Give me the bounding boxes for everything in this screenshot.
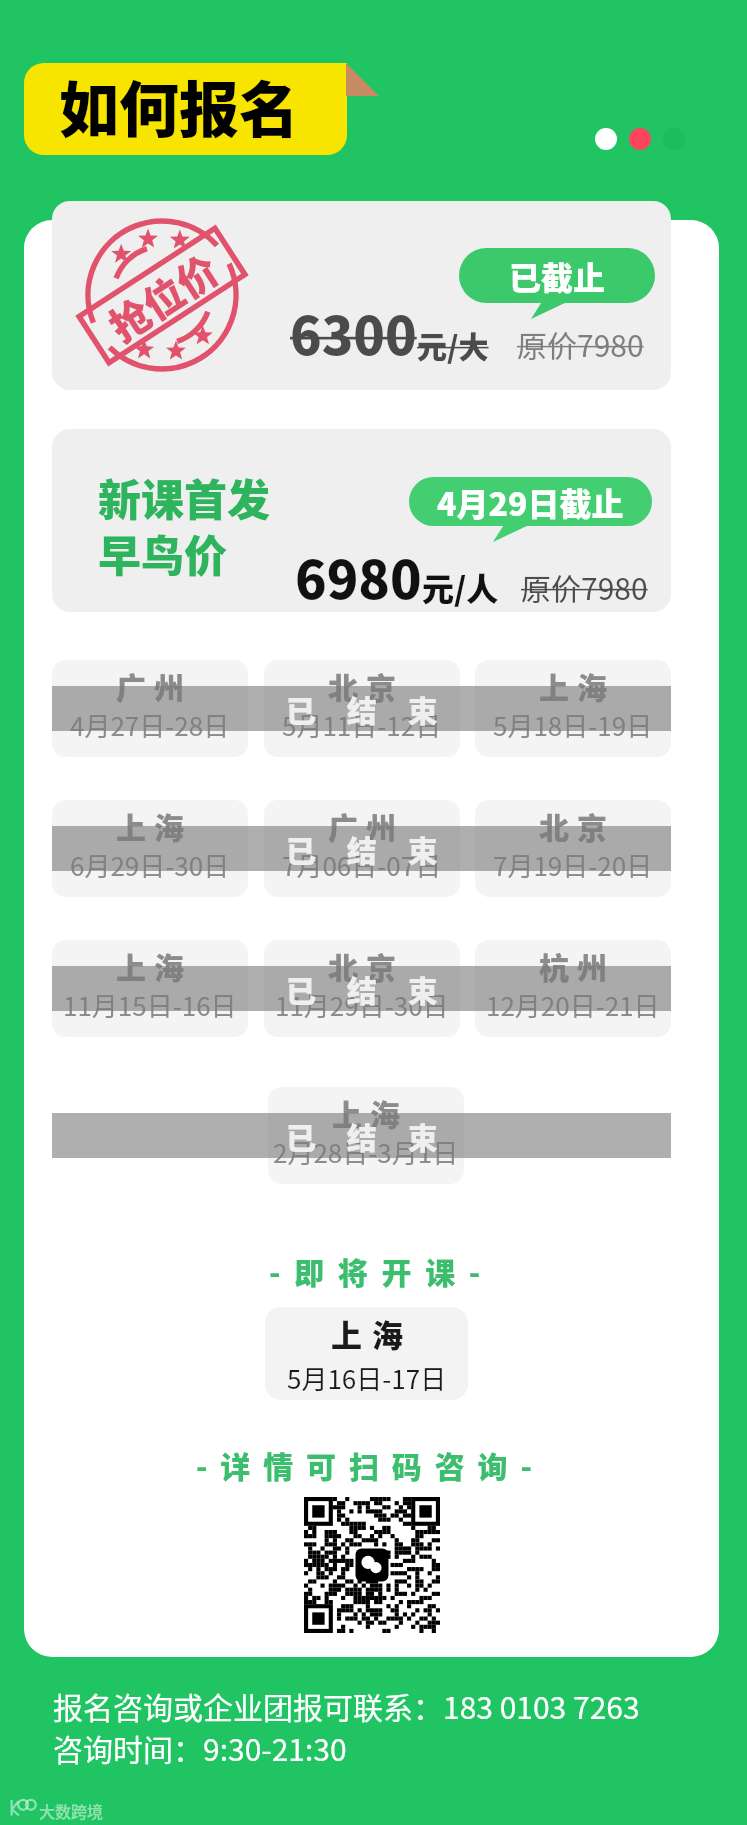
staticText: 已截止	[509, 253, 606, 299]
staticText: 上海	[116, 804, 192, 847]
staticText: 7月19日-20日	[493, 846, 653, 884]
button[interactable]: 北京	[264, 940, 460, 1037]
button[interactable]: 4月29日截止	[409, 477, 652, 526]
button[interactable]: 上海	[265, 1307, 468, 1400]
staticText: - 详 情 可 扫 码 咨 询 -	[196, 1443, 535, 1486]
staticText: 已 结 束	[286, 827, 450, 870]
button[interactable]: 广州	[264, 800, 460, 897]
staticText: 广州	[116, 664, 192, 707]
staticText: 如何报名	[59, 63, 299, 149]
staticText: 上海	[331, 1311, 413, 1356]
staticText: 原价7980	[517, 322, 644, 365]
staticText: 已 结 束	[286, 1114, 450, 1157]
staticText: 7月06日-07日	[282, 846, 442, 884]
staticText: 杭州	[539, 944, 615, 987]
staticText: 已 结 束	[286, 687, 450, 730]
staticText: 5月16日-17日	[287, 1359, 447, 1397]
staticText: 4月27日-28日	[70, 706, 230, 744]
staticText: 上海	[332, 1091, 408, 1134]
staticText: 11月15日-16日	[63, 986, 237, 1024]
staticText: 6300	[290, 295, 417, 370]
staticText: 上海	[116, 944, 192, 987]
button[interactable]: 上海	[475, 660, 671, 757]
staticText: 北京	[328, 664, 404, 707]
staticText: 元/大	[417, 323, 489, 366]
staticText: 咨询时间：9:30-21:30	[53, 1726, 347, 1769]
staticText: 5月18日-19日	[493, 706, 653, 744]
button[interactable]: 杭州	[475, 940, 671, 1037]
staticText: 已 结 束	[286, 967, 450, 1010]
button[interactable]: 上海	[268, 1087, 464, 1184]
staticText: - 即 将 开 课 -	[269, 1249, 484, 1292]
button[interactable]: 上海	[52, 940, 248, 1037]
staticText: 4月29日截止	[437, 479, 624, 525]
staticText: 6980	[295, 539, 422, 612]
staticText: 大数跨境	[39, 1799, 104, 1822]
staticText: 上海	[539, 664, 615, 707]
staticText: 报名咨询或企业团报可联系：183 0103 7263	[53, 1684, 640, 1727]
staticText: 抢位价	[97, 240, 227, 351]
button[interactable]: WeChat QR code	[304, 1497, 440, 1633]
staticText: 12月20日-21日	[486, 986, 660, 1024]
staticText: 11月29日-30日	[275, 986, 449, 1024]
button[interactable]: 如何报名	[24, 63, 347, 155]
staticText: 原价7980	[521, 565, 648, 608]
staticText: 5月11日-12日	[282, 706, 442, 744]
staticText: 新课首发	[98, 466, 270, 528]
button[interactable]: 已截止	[459, 248, 655, 303]
button[interactable]: 广州	[52, 660, 248, 757]
staticText: 北京	[539, 804, 615, 847]
button[interactable]: 北京	[475, 800, 671, 897]
staticText: 元/人	[422, 564, 499, 610]
staticText: 北京	[328, 944, 404, 987]
staticText: 早鸟价	[98, 522, 227, 584]
staticText: 2月28日-3月1日	[273, 1133, 459, 1171]
staticText: 广州	[328, 804, 404, 847]
staticText: 6月29日-30日	[70, 846, 230, 884]
button[interactable]: 北京	[264, 660, 460, 757]
button[interactable]: 上海	[52, 800, 248, 897]
